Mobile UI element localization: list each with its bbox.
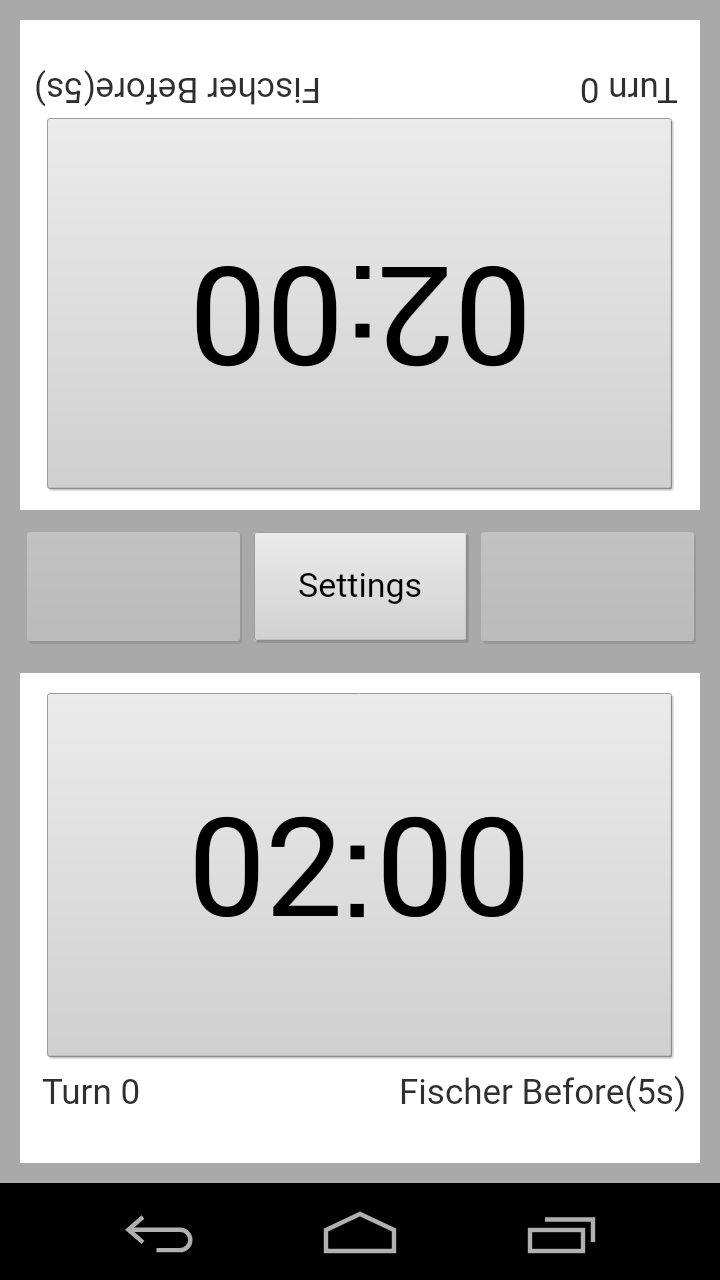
button[interactable]: 02: [20, 673, 700, 1163]
staticText: 02: [189, 789, 343, 950]
staticText: 02: [188, 789, 342, 950]
staticText: Turn 0: [42, 1072, 141, 1113]
staticText: Fischer Before(5s): [399, 1072, 687, 1113]
staticText: 00: [376, 789, 530, 950]
staticText: Fischer Before(5s): [33, 69, 321, 110]
staticText: 00: [190, 233, 344, 394]
staticText: 00: [189, 233, 343, 394]
staticText: Settings: [298, 565, 423, 605]
button[interactable]: Recent apps: [480, 1183, 720, 1280]
staticText: 02: [378, 233, 532, 394]
staticText: 00: [377, 789, 531, 950]
staticText: 02: [377, 233, 531, 394]
button[interactable]: Back: [0, 1183, 240, 1280]
staticText: Turn 0: [579, 69, 678, 110]
button[interactable]: Settings: [254, 532, 467, 641]
button[interactable]: Home: [240, 1183, 480, 1280]
button[interactable]: Turn 0: [20, 20, 700, 510]
